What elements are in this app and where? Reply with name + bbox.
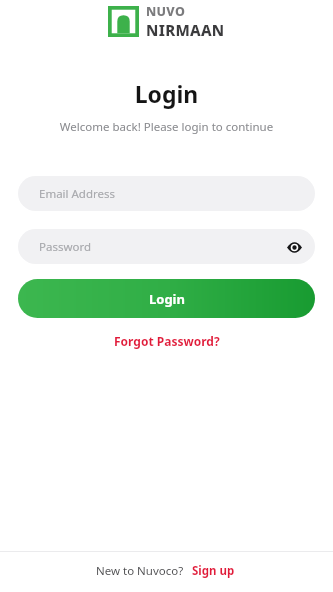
button[interactable]: Forgot Password? — [108, 331, 226, 351]
button[interactable]: Email Address — [18, 176, 315, 211]
staticText: NIRMAAN — [146, 20, 225, 40]
button[interactable]: Password — [18, 229, 315, 264]
staticText: New to Nuvoco? — [96, 563, 184, 579]
button[interactable]: Show password — [282, 235, 306, 259]
staticText: Forgot Password? — [114, 333, 220, 349]
staticText: Welcome back! Please login to continue — [0, 119, 333, 135]
staticText: Email Address — [39, 186, 116, 202]
staticText: Sign up — [192, 563, 235, 579]
staticText: Login — [149, 290, 185, 308]
staticText: Login — [0, 78, 333, 109]
staticText: NUVO — [146, 3, 186, 20]
button[interactable]: Login — [18, 279, 315, 318]
button[interactable]: Sign up — [189, 561, 238, 581]
staticText: Password — [39, 239, 92, 255]
